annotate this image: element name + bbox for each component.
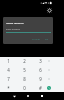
button[interactable]: Call	[47, 86, 51, 90]
button[interactable]: Action	[45, 74, 52, 83]
staticText: *	[7, 85, 10, 91]
button[interactable]: Home	[24, 92, 32, 100]
button[interactable]: *	[0, 83, 16, 92]
button[interactable]: 2	[16, 57, 32, 65]
button[interactable]: 6	[32, 65, 48, 74]
button[interactable]: 0	[16, 83, 32, 92]
staticText: Enter distance	[6, 28, 21, 31]
button[interactable]: Recent apps	[38, 92, 46, 100]
staticText: Adjust distance	[6, 21, 24, 24]
staticText: 2	[23, 58, 26, 64]
staticText: OK	[45, 38, 48, 41]
button[interactable]: Action	[45, 65, 52, 74]
button[interactable]: CANCEL	[30, 37, 42, 42]
button[interactable]: Settings	[45, 6, 53, 14]
button[interactable]: #	[32, 83, 48, 92]
button[interactable]: 3	[32, 57, 48, 65]
staticText: 4	[7, 67, 10, 73]
staticText: 5	[23, 67, 26, 73]
button[interactable]: Action	[45, 57, 52, 65]
button[interactable]: 7	[0, 74, 16, 83]
button[interactable]: 8	[16, 74, 32, 83]
staticText: 7	[7, 76, 10, 82]
staticText: CANCEL	[32, 38, 40, 41]
button[interactable]: OK	[43, 37, 50, 42]
button[interactable]: 5	[16, 65, 32, 74]
button[interactable]: 9	[32, 74, 48, 83]
staticText: #	[39, 85, 42, 91]
staticText: 3	[39, 58, 42, 64]
staticText: 0	[23, 85, 26, 91]
button[interactable]: Back	[10, 92, 18, 100]
button[interactable]: 4	[0, 65, 16, 74]
staticText: 8	[23, 76, 26, 82]
staticText: 6	[39, 67, 42, 73]
button[interactable]: 1	[0, 57, 16, 65]
staticText: 1	[7, 58, 10, 64]
staticText: 9	[39, 76, 42, 82]
